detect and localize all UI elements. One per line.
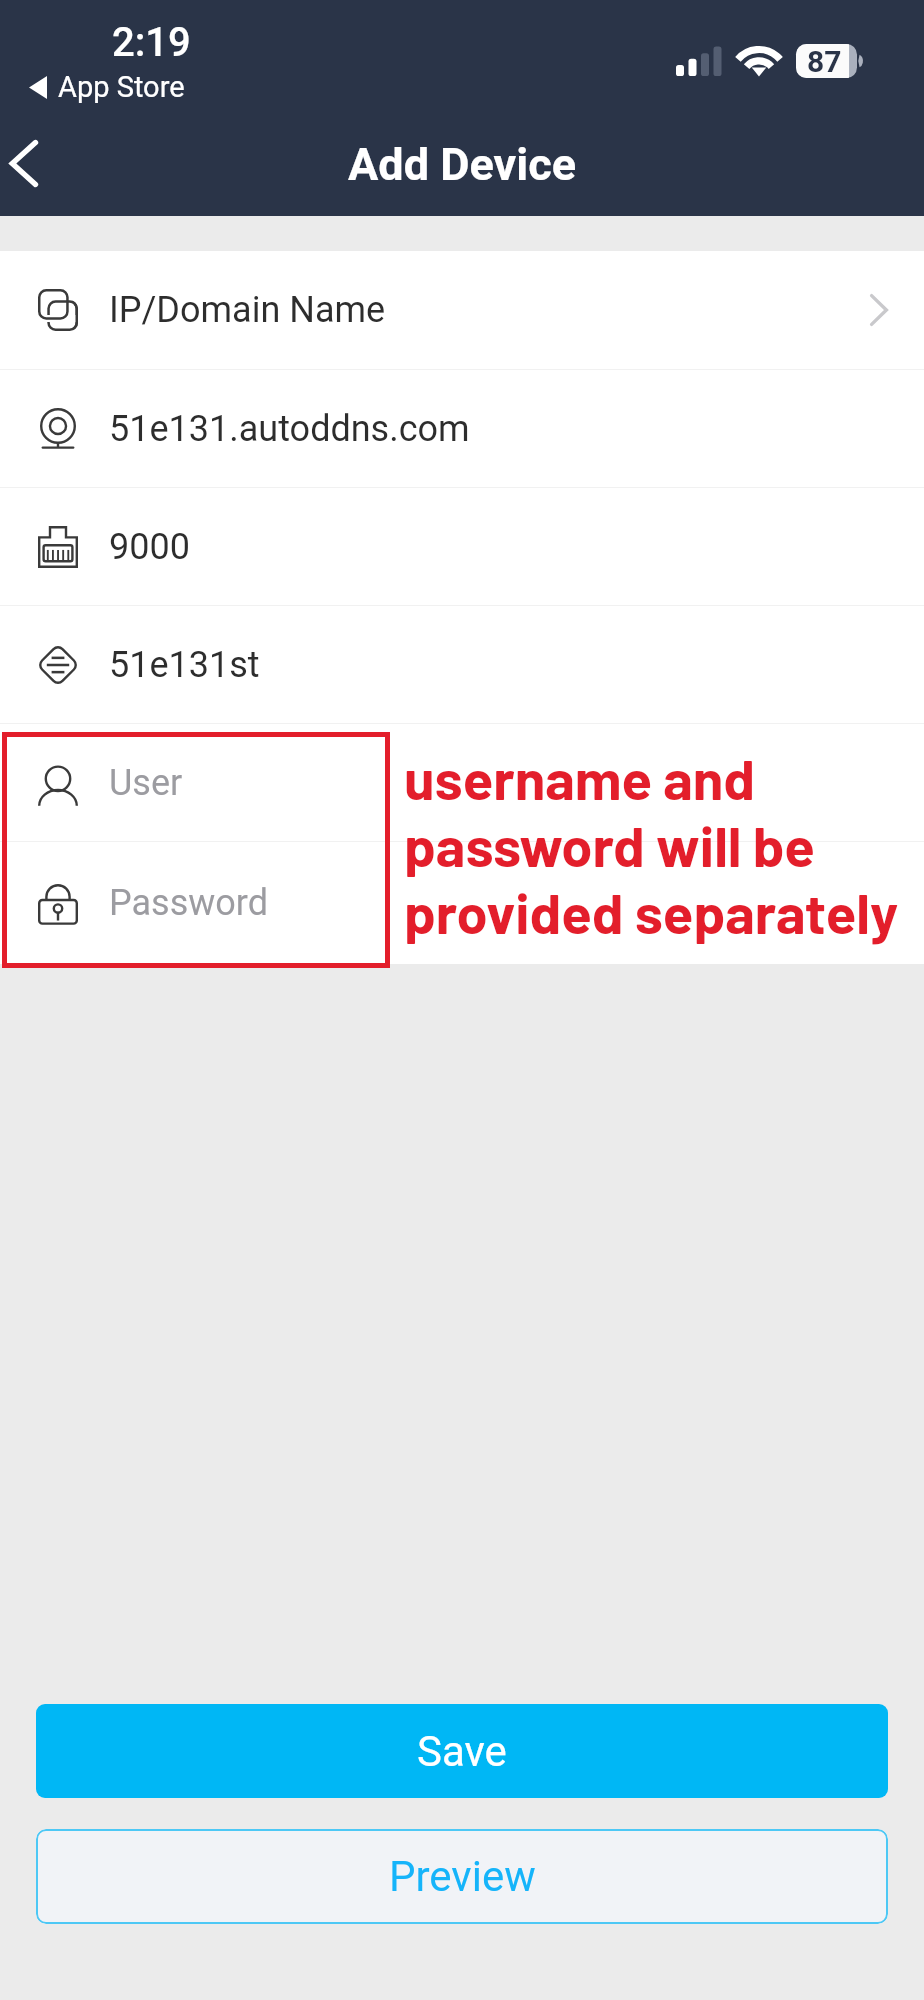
staticText: 87 [807,44,842,79]
button[interactable]: 51e131st [0,606,924,723]
staticText: 51e131.autoddns.com [109,408,470,450]
staticText: Password [109,882,269,924]
staticText: Save [417,1727,507,1776]
button[interactable]: Preview [36,1829,888,1924]
staticText: App Store [58,70,185,104]
staticText: 2:19 [112,19,191,66]
button[interactable]: Password [0,842,924,964]
staticText: 9000 [109,526,190,568]
button[interactable]: User [0,724,924,841]
staticText: provided separately [404,878,899,945]
staticText: User [109,762,183,804]
staticText: username and [404,744,755,811]
staticText: password will be [404,811,815,878]
staticText: 51e131st [109,644,260,686]
staticText: IP/Domain Name [109,289,386,331]
staticText: Preview [389,1852,536,1901]
button[interactable]: Back [0,122,70,204]
staticText: Add Device [0,138,924,191]
button[interactable]: Save [36,1704,888,1798]
button[interactable]: 51e131.autoddns.com [0,370,924,487]
button[interactable]: 9000 [0,488,924,605]
button[interactable]: IP/Domain Name [0,251,924,369]
